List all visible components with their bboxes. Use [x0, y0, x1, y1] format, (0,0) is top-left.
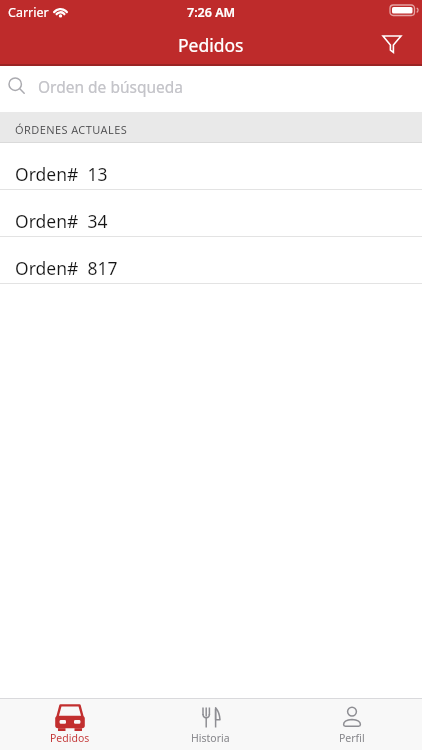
staticText: Perfil — [339, 731, 365, 745]
button[interactable]: Orden de búsqueda — [0, 63, 422, 109]
staticText: 7:26 AM — [187, 4, 236, 21]
button[interactable]: Orden# 34 — [0, 190, 422, 237]
staticText: Orden# 817 — [15, 256, 118, 280]
button[interactable]: Orden# 817 — [0, 237, 422, 284]
staticText: Carrier — [8, 4, 49, 21]
staticText: Pedidos — [50, 731, 90, 745]
staticText: Orden# 13 — [15, 162, 108, 186]
button[interactable]: Pedidos — [0, 699, 140, 750]
button[interactable]: Orden# 13 — [0, 143, 422, 190]
button[interactable]: Historia — [140, 699, 281, 750]
staticText: Orden de búsqueda — [38, 76, 184, 97]
button[interactable]: Perfil — [281, 699, 422, 750]
staticText: Pedidos — [178, 33, 244, 57]
staticText: Orden# 34 — [15, 209, 108, 233]
button[interactable] — [378, 30, 406, 58]
staticText: Historia — [191, 731, 230, 745]
staticText: ÓRDENES ACTUALES — [15, 122, 128, 137]
